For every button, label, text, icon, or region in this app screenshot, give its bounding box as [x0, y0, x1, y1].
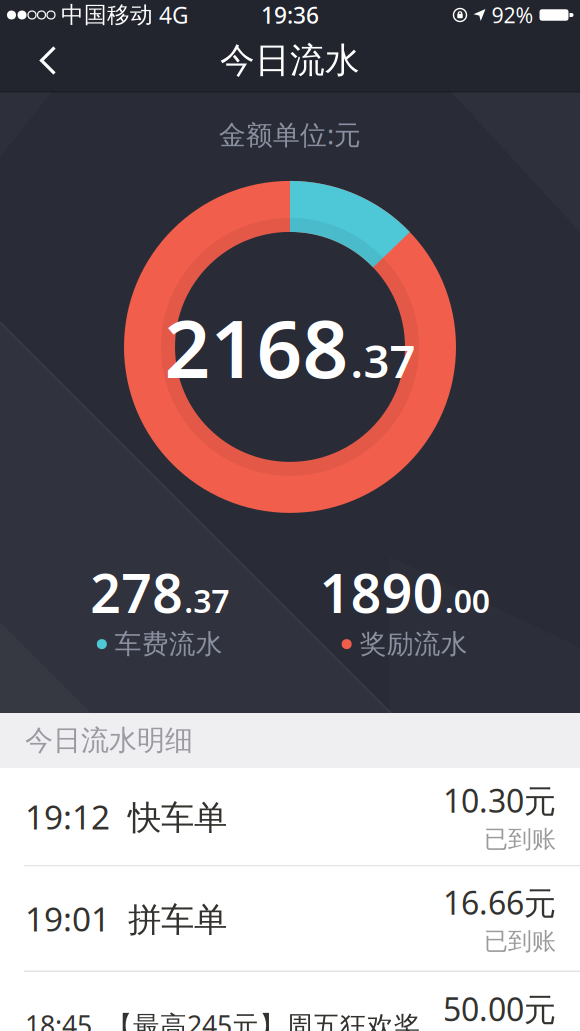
staticText: 278	[90, 557, 183, 628]
staticText: 1890	[320, 557, 444, 628]
staticText: 已到账	[484, 824, 556, 854]
staticText: 2168	[164, 294, 348, 400]
button[interactable]: 19:12 快车单	[0, 768, 580, 865]
staticText: 车费流水	[115, 628, 223, 660]
staticText: 今日流水	[220, 39, 360, 82]
staticText: .00	[445, 579, 490, 622]
staticText: .37	[184, 579, 229, 622]
staticText: 19:36	[261, 0, 319, 30]
staticText: 16.66元	[443, 881, 556, 923]
staticText: 金额单位:元	[219, 116, 361, 152]
button[interactable]: 18:45 【最高245元】周五狂欢奖	[0, 972, 580, 1030]
button[interactable]: 19:01 拼车单	[0, 866, 580, 970]
staticText: 今日流水明细	[25, 723, 193, 758]
button[interactable]: Back	[0, 30, 80, 90]
staticText: 4G	[159, 0, 189, 30]
staticText: 已到账	[484, 926, 556, 956]
staticText: 50.00元	[443, 987, 556, 1030]
staticText: 奖励流水	[360, 628, 468, 660]
staticText: 中国移动	[61, 1, 153, 29]
staticText: 19:12 快车单	[25, 794, 227, 839]
staticText: 19:01 拼车单	[25, 896, 227, 941]
staticText: 92%	[491, 1, 533, 29]
staticText: 18:45 【最高245元】周五狂欢奖	[25, 1007, 421, 1031]
staticText: .37	[350, 330, 415, 390]
staticText: 10.30元	[443, 779, 556, 821]
